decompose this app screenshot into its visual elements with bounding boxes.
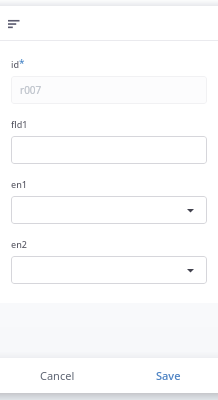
button[interactable]: r007 <box>11 76 207 104</box>
staticText: fld1 <box>11 118 28 130</box>
staticText: * <box>19 56 25 69</box>
button[interactable]: Save <box>109 358 218 393</box>
button[interactable] <box>11 136 207 164</box>
staticText: en2 <box>11 238 27 250</box>
staticText: Save <box>156 368 181 383</box>
button[interactable]: Dropdown <box>11 196 207 224</box>
staticText: id <box>11 58 20 70</box>
button[interactable]: Menu <box>3 12 25 34</box>
staticText: Cancel <box>40 368 75 383</box>
button[interactable]: Cancel <box>0 358 109 393</box>
staticText: en1 <box>11 178 27 190</box>
staticText: r007 <box>20 83 42 97</box>
button[interactable]: Dropdown <box>11 256 207 284</box>
